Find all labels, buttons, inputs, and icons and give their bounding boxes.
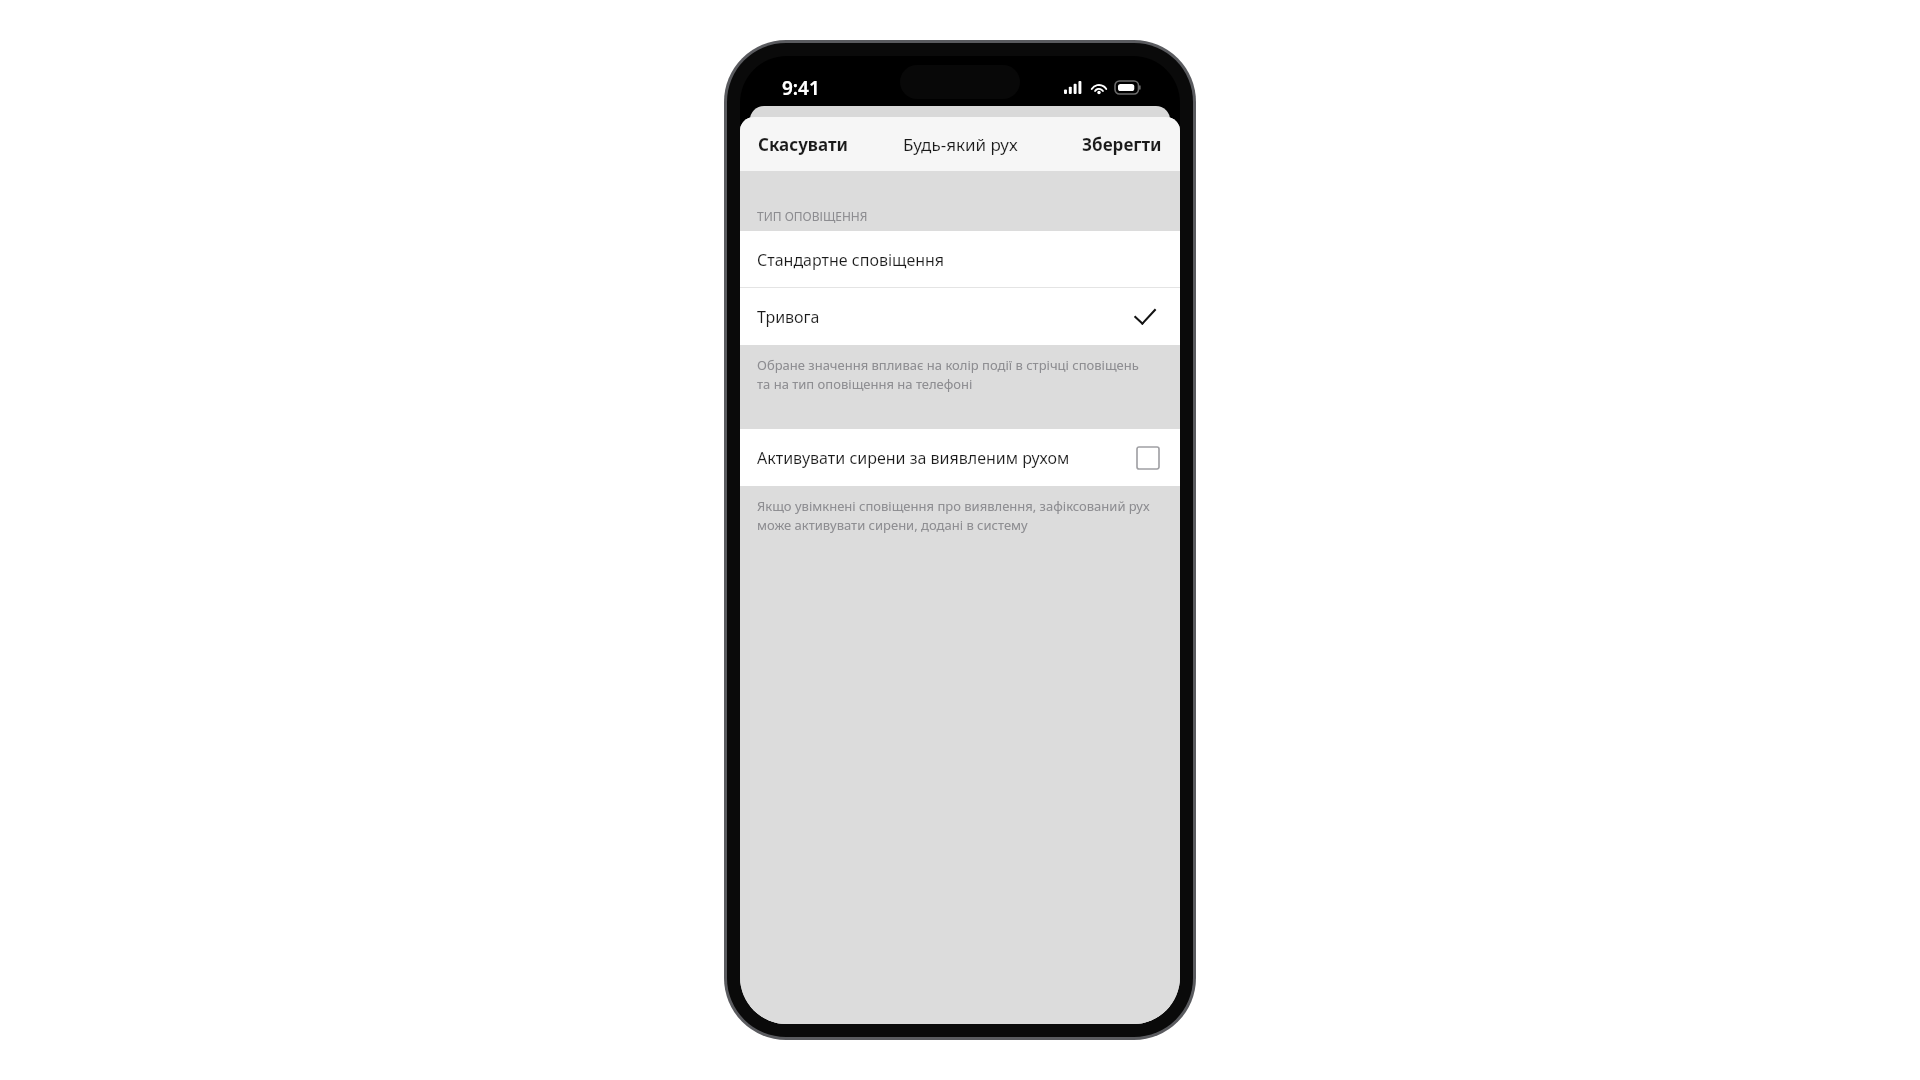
staticText: Обране значення впливає на колір події в…	[757, 356, 1150, 393]
button[interactable]: Зберегти	[1064, 123, 1180, 166]
staticText: Будь-який рух	[903, 133, 1018, 156]
staticText: Якщо увімкнені сповіщення про виявлення,…	[757, 497, 1150, 534]
staticText: ТИП ОПОВІЩЕННЯ	[757, 208, 868, 224]
other: Активувати сирени	[1137, 447, 1159, 469]
staticText: Скасувати	[758, 133, 848, 156]
button[interactable]: Стандартне сповіщення	[740, 231, 1180, 288]
button[interactable]: Тривога	[740, 288, 1180, 345]
staticText: Активувати сирени за виявленим рухом	[757, 447, 1070, 469]
button[interactable]: Скасувати	[740, 123, 866, 166]
staticText: Стандартне сповіщення	[757, 249, 945, 271]
staticText: Тривога	[757, 306, 820, 328]
staticText: Зберегти	[1082, 133, 1162, 156]
staticText: 9:41	[782, 75, 820, 101]
other: Вибрано	[1134, 306, 1156, 328]
button[interactable]: Активувати сирени за виявленим рухом	[740, 429, 1180, 486]
